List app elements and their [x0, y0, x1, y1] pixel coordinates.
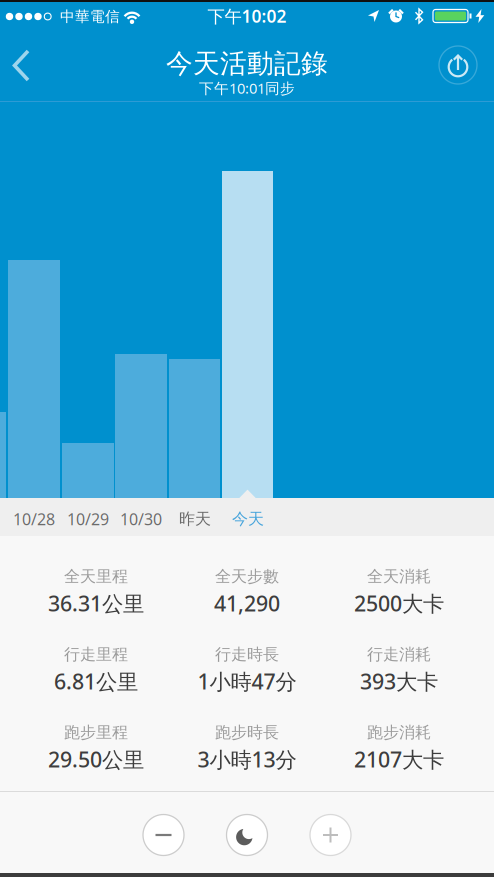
button[interactable]: [438, 45, 478, 85]
staticText: 行走里程: [64, 644, 128, 664]
staticText: 行走消耗: [367, 644, 431, 664]
staticText: 10/28: [13, 508, 55, 530]
staticText: 跑步時長: [215, 722, 279, 742]
button[interactable]: [226, 814, 267, 855]
button[interactable]: 10/30: [120, 508, 162, 530]
staticText: 3小時13分: [197, 745, 296, 773]
staticText: 41,290: [214, 589, 280, 617]
staticText: 29.50公里: [48, 745, 144, 773]
staticText: 全天里程: [64, 566, 128, 586]
staticText: 下午10:02: [207, 4, 286, 27]
staticText: 10/29: [67, 508, 109, 530]
staticText: 今天: [232, 509, 264, 529]
staticText: 全天消耗: [367, 566, 431, 586]
staticText: 跑步消耗: [367, 722, 431, 742]
button[interactable]: 昨天: [179, 509, 211, 529]
staticText: 10/30: [120, 508, 162, 530]
button[interactable]: [143, 814, 184, 855]
staticText: 中華電信: [60, 7, 120, 25]
staticText: 6.81公里: [54, 667, 138, 695]
staticText: 今天活動記錄: [166, 47, 328, 80]
button[interactable]: 10/28: [13, 508, 55, 530]
button[interactable]: 今天: [232, 509, 264, 529]
staticText: 1小時47分: [197, 667, 296, 695]
button[interactable]: 10/29: [67, 508, 109, 530]
button[interactable]: [0, 30, 44, 101]
staticText: 2107大卡: [354, 745, 444, 773]
staticText: 行走時長: [215, 644, 279, 664]
staticText: 36.31公里: [48, 589, 144, 617]
staticText: 393大卡: [360, 667, 438, 695]
staticText: 全天步數: [215, 566, 279, 586]
button[interactable]: [310, 814, 351, 855]
staticText: 昨天: [179, 509, 211, 529]
staticText: 跑步里程: [64, 722, 128, 742]
staticText: 下午10:01同步: [199, 78, 295, 98]
staticText: 2500大卡: [354, 589, 444, 617]
